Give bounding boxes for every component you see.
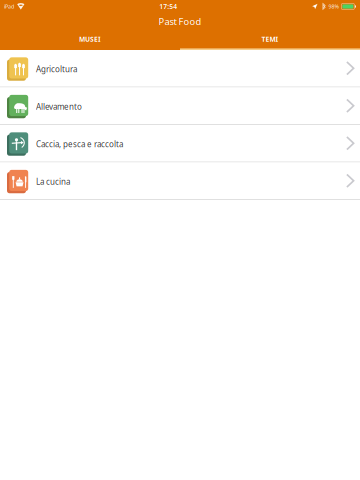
staticText: 17:54 [159, 2, 177, 11]
staticText: La cucina [36, 176, 70, 187]
button[interactable]: Allevamento [0, 87, 360, 125]
button[interactable]: TEMI [180, 30, 360, 50]
button[interactable]: Caccia, pesca e raccolta [0, 125, 360, 162]
staticText: Allevamento [36, 101, 82, 112]
staticText: 98% [328, 3, 338, 10]
staticText: TEMI [261, 35, 278, 44]
staticText: iPad [4, 3, 14, 10]
button[interactable]: Agricoltura [0, 50, 360, 87]
staticText: MUSEI [79, 35, 101, 44]
button[interactable]: La cucina [0, 162, 360, 200]
staticText: Agricoltura [36, 64, 77, 74]
button[interactable]: MUSEI [0, 30, 180, 50]
staticText: Caccia, pesca e raccolta [36, 139, 123, 149]
staticText: Past Food [158, 15, 201, 28]
